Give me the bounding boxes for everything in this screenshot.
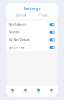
staticText: Search — [22, 92, 28, 94]
button[interactable]: Screen Time — [7, 44, 57, 51]
button[interactable]: Sounds — [7, 28, 57, 36]
button[interactable]: Search — [19, 86, 32, 97]
staticText: Screen Time — [9, 46, 25, 49]
button[interactable]: Privacy — [32, 14, 54, 17]
staticText: Do Not Disturb — [9, 38, 30, 42]
staticText: Home — [10, 92, 14, 94]
staticText: Sounds — [9, 30, 19, 34]
button[interactable]: Alerts — [32, 86, 45, 97]
button[interactable]: General — [10, 14, 32, 17]
staticText: Me — [50, 92, 52, 94]
staticText: Privacy — [39, 14, 47, 17]
button[interactable]: Me — [45, 86, 58, 97]
button[interactable]: Notifications — [7, 21, 57, 28]
staticText: General — [15, 14, 26, 17]
button[interactable]: Do Not Disturb — [7, 36, 57, 44]
staticText: Notifications — [9, 23, 26, 26]
button[interactable]: Home — [6, 86, 19, 97]
staticText: Alerts — [36, 92, 40, 94]
staticText: Settings — [23, 6, 40, 11]
